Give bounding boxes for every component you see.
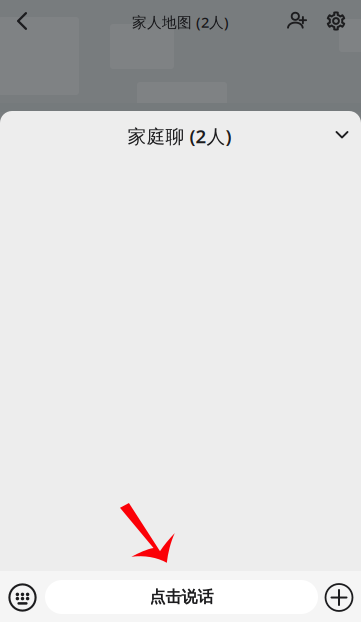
button[interactable]: 点击说话 — [45, 580, 318, 614]
button[interactable]: Keyboard — [0, 572, 45, 622]
button[interactable]: Back — [1, 0, 43, 42]
button[interactable]: Settings — [314, 0, 358, 43]
staticText: 点击说话 — [149, 587, 213, 607]
button[interactable]: More — [317, 572, 361, 622]
button[interactable]: Add member — [274, 0, 318, 41]
staticText: 家人地图 (2人) — [132, 12, 229, 32]
staticText: 家庭聊 (2人) — [127, 124, 231, 148]
button[interactable]: 家庭聊 (2人) — [0, 111, 361, 155]
